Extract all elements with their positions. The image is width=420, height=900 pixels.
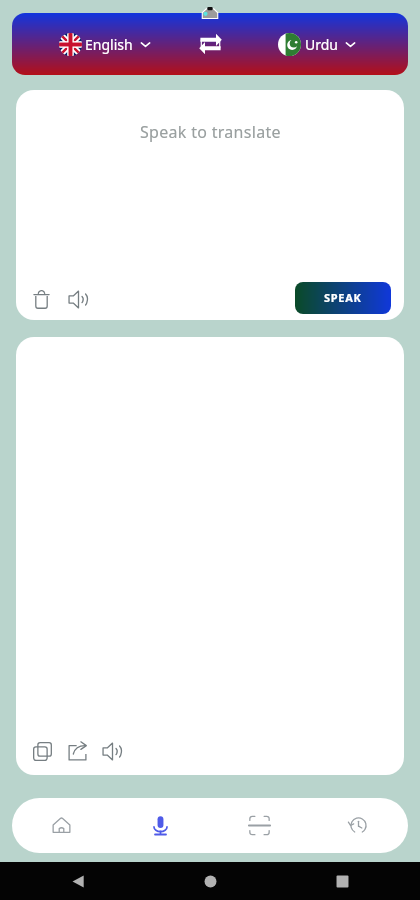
button[interactable]: Back <box>63 866 93 896</box>
staticText: English <box>85 35 133 54</box>
other: Status icon <box>202 7 218 18</box>
button[interactable]: Home <box>12 798 111 853</box>
button[interactable]: SPEAK <box>295 282 391 314</box>
button[interactable]: Speak aloud <box>63 284 93 314</box>
staticText: Urdu <box>305 35 338 54</box>
button[interactable]: Share <box>62 736 92 766</box>
button[interactable]: Home <box>195 866 225 896</box>
button[interactable]: Voice input <box>111 798 210 853</box>
staticText: SPEAK <box>324 290 362 305</box>
button[interactable]: Swap languages <box>186 20 234 68</box>
button[interactable]: Recent apps <box>327 866 357 896</box>
button[interactable]: Copy <box>27 736 57 766</box>
button[interactable]: Scan text <box>210 798 309 853</box>
button[interactable]: Delete <box>26 284 56 314</box>
button[interactable]: English <box>12 13 186 75</box>
button[interactable]: History <box>309 798 408 853</box>
button[interactable]: Speak aloud <box>97 736 127 766</box>
button[interactable]: Urdu <box>234 13 408 75</box>
staticText: Speak to translate <box>140 121 281 143</box>
